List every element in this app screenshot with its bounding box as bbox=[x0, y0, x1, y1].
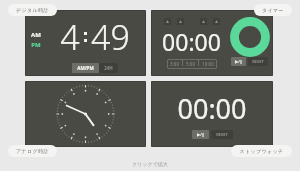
staticText: 00:00 bbox=[177, 90, 247, 127]
staticText: PM bbox=[31, 41, 41, 49]
staticText: RESET bbox=[216, 132, 228, 137]
staticText: 00:00 bbox=[162, 26, 221, 57]
staticText: ▶/‖ bbox=[235, 59, 242, 64]
staticText: RESET bbox=[252, 59, 264, 64]
staticText: ストップウォッチ bbox=[239, 148, 284, 154]
staticText: アナログ時計 bbox=[16, 148, 49, 154]
button[interactable]: タイマー bbox=[254, 4, 292, 16]
staticText: 3:00 bbox=[170, 61, 179, 67]
button[interactable]: Increase bbox=[177, 18, 184, 25]
staticText: デジタル時計 bbox=[16, 7, 49, 13]
staticText: 5:00 bbox=[186, 61, 195, 67]
staticText: 24H bbox=[104, 65, 113, 71]
button[interactable]: Play pause bbox=[192, 130, 209, 139]
button[interactable]: AM/PM bbox=[72, 63, 99, 73]
staticText: 10:00 bbox=[202, 61, 214, 67]
button[interactable]: Analog clock bbox=[25, 81, 146, 147]
button[interactable]: 24H bbox=[99, 63, 118, 73]
button[interactable]: 5:00 bbox=[183, 59, 198, 69]
staticText: AM/PM bbox=[77, 65, 94, 71]
button[interactable]: RESET bbox=[211, 130, 233, 139]
staticText: 4 bbox=[60, 14, 80, 60]
button[interactable]: Increase bbox=[164, 18, 171, 25]
button[interactable]: 10:00 bbox=[199, 59, 217, 69]
button[interactable]: ストップウォッチ bbox=[231, 145, 292, 157]
button[interactable]: Play pause bbox=[231, 57, 246, 66]
staticText: 49 bbox=[91, 14, 130, 60]
staticText: AM bbox=[31, 31, 41, 39]
staticText: ▶/‖ bbox=[197, 132, 204, 137]
button[interactable]: 3:00 bbox=[167, 59, 182, 69]
button[interactable]: RESET bbox=[248, 57, 268, 66]
button[interactable]: デジタル時計 bbox=[8, 4, 57, 16]
button[interactable]: Start timer bbox=[233, 20, 267, 54]
staticText: クリックで拡大 bbox=[132, 161, 168, 167]
button[interactable]: Increase bbox=[200, 18, 207, 25]
staticText: タイマー bbox=[262, 7, 284, 13]
button[interactable]: アナログ時計 bbox=[8, 145, 57, 157]
button[interactable]: Increase bbox=[213, 18, 220, 25]
